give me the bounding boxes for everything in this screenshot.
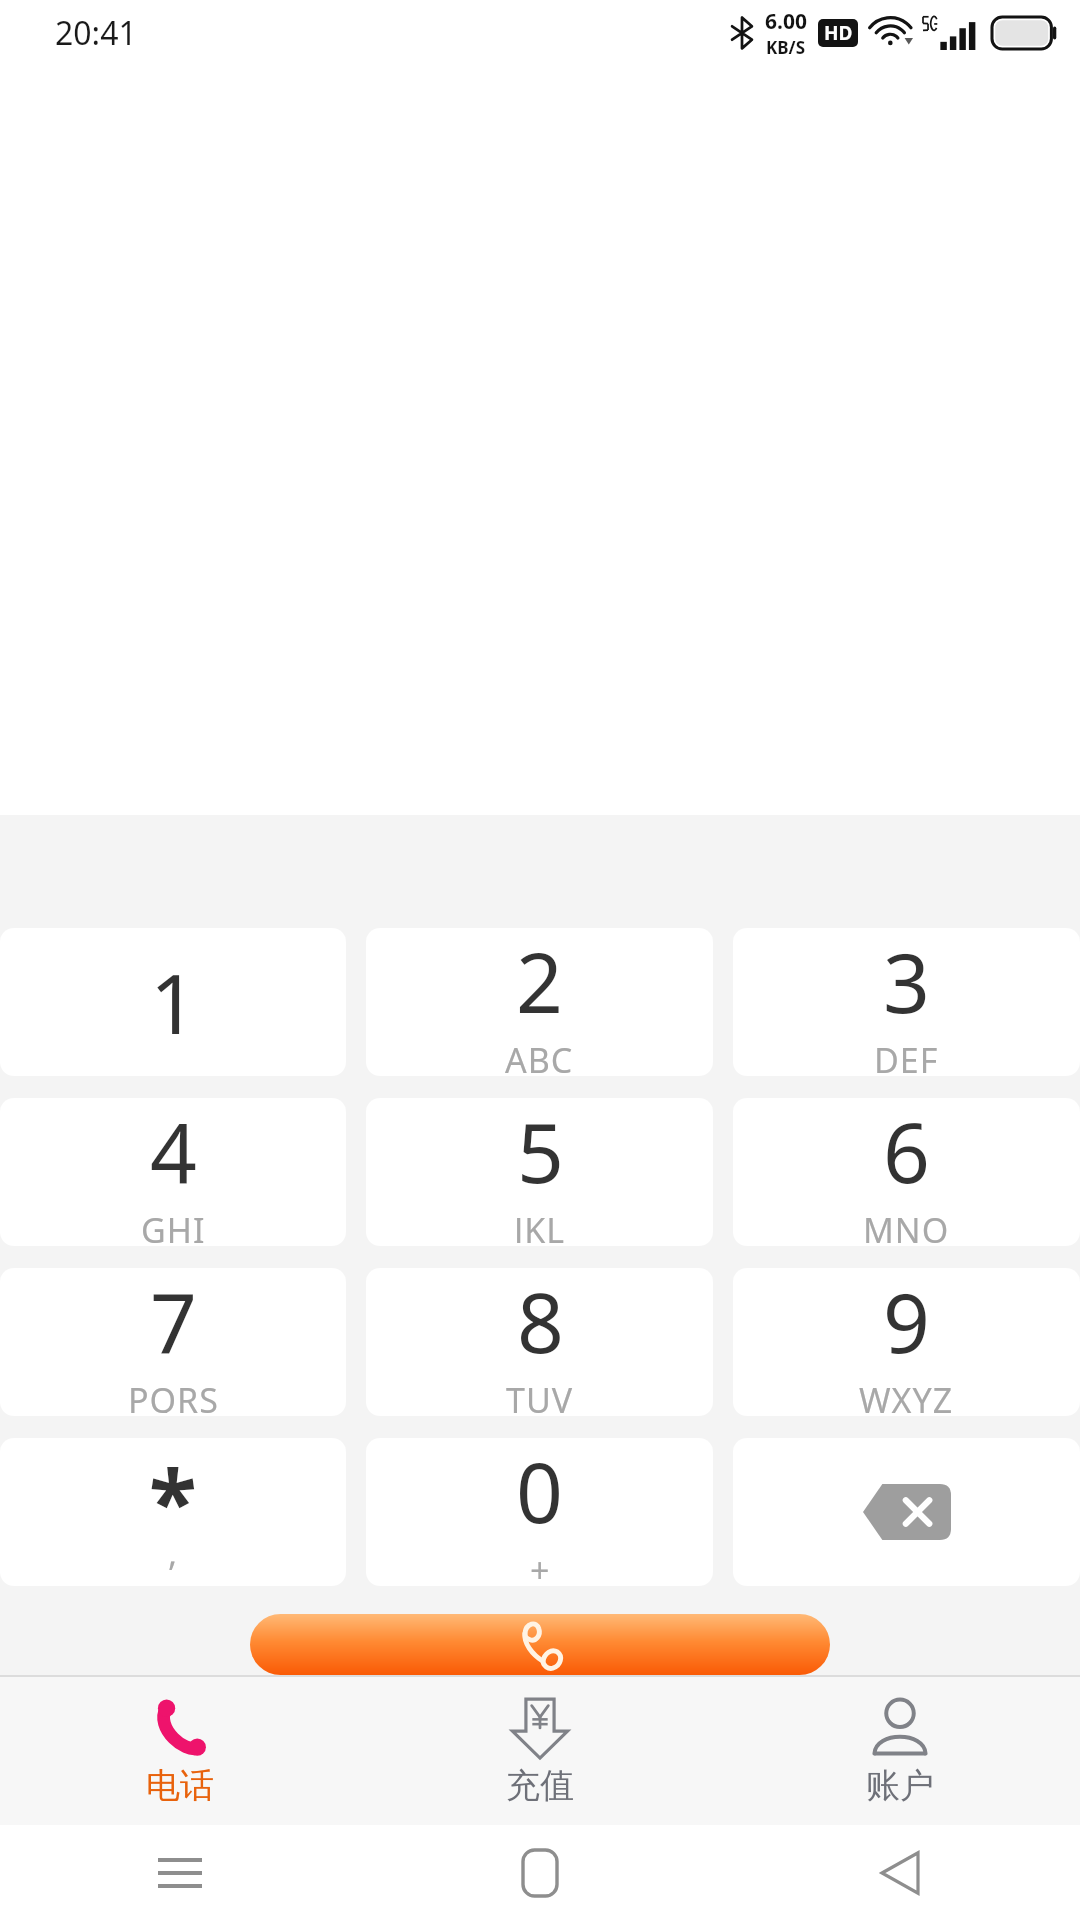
- button[interactable]: *: [0, 1438, 346, 1586]
- staticText: +: [530, 1547, 550, 1583]
- button[interactable]: Call: [250, 1614, 830, 1675]
- button[interactable]: 0: [366, 1438, 713, 1586]
- button[interactable]: 2: [366, 928, 713, 1076]
- button[interactable]: Delete: [733, 1438, 1080, 1586]
- staticText: 3: [883, 928, 930, 1037]
- staticText: *: [149, 1440, 197, 1510]
- button[interactable]: 充值: [360, 1677, 720, 1825]
- staticText: 20:41: [55, 11, 137, 55]
- staticText: MNO: [863, 1207, 950, 1243]
- staticText: 9: [883, 1268, 930, 1377]
- staticText: GHI: [141, 1207, 206, 1243]
- staticText: 5: [517, 1098, 564, 1207]
- staticText: 充值: [506, 1764, 574, 1807]
- staticText: JKL: [514, 1207, 566, 1243]
- staticText: 6: [883, 1098, 930, 1207]
- staticText: DEF: [874, 1037, 939, 1073]
- staticText: PQRS: [128, 1377, 219, 1413]
- staticText: 0: [516, 1438, 563, 1547]
- button[interactable]: 3: [733, 928, 1080, 1076]
- staticText: HD: [824, 20, 853, 46]
- button[interactable]: Back: [720, 1825, 1080, 1920]
- staticText: 8: [517, 1268, 564, 1377]
- staticText: 7: [150, 1268, 197, 1377]
- staticText: 账户: [866, 1764, 934, 1807]
- button[interactable]: 1: [0, 928, 346, 1076]
- staticText: 2: [516, 928, 563, 1037]
- staticText: 电话: [146, 1764, 214, 1807]
- button[interactable]: 电话: [0, 1677, 360, 1825]
- staticText: ABC: [505, 1037, 574, 1073]
- button[interactable]: Home: [360, 1825, 720, 1920]
- button[interactable]: 4: [0, 1098, 346, 1246]
- staticText: ,: [168, 1530, 178, 1576]
- staticText: 1: [150, 946, 197, 1058]
- staticText: 4: [150, 1098, 197, 1207]
- staticText: WXYZ: [859, 1377, 954, 1413]
- button[interactable]: 账户: [720, 1677, 1080, 1825]
- staticText: TUV: [506, 1377, 574, 1413]
- button[interactable]: 6: [733, 1098, 1080, 1246]
- button[interactable]: Recents: [0, 1825, 360, 1920]
- button[interactable]: 7: [0, 1268, 346, 1416]
- button[interactable]: 8: [366, 1268, 713, 1416]
- staticText: KB/S: [766, 36, 806, 59]
- staticText: 6.00: [765, 7, 807, 36]
- button[interactable]: 9: [733, 1268, 1080, 1416]
- button[interactable]: 5: [366, 1098, 713, 1246]
